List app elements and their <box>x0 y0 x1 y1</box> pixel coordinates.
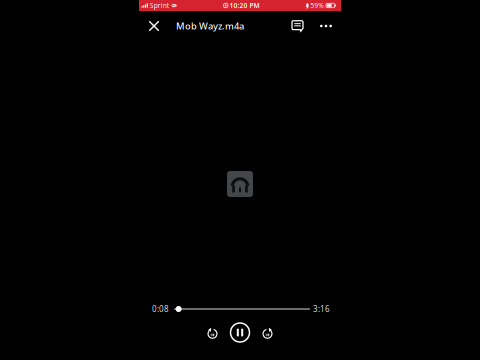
staticText: Sprint <box>150 1 169 10</box>
staticText: 59% <box>310 1 324 10</box>
staticText: 3:16 <box>313 304 330 314</box>
button[interactable]: Skip forward 15 seconds <box>254 322 281 343</box>
button[interactable]: More options <box>315 11 337 41</box>
staticText: 0:08 <box>152 304 169 314</box>
button[interactable]: Comments <box>286 11 309 41</box>
button[interactable]: Pause <box>226 322 254 343</box>
staticText: Mob Wayz.m4a <box>176 20 244 32</box>
button[interactable]: Close <box>141 11 167 41</box>
button[interactable]: Mob Wayz.m4a <box>167 11 244 41</box>
button[interactable]: Skip back 15 seconds <box>199 322 226 343</box>
staticText: 10:20 PM <box>229 1 259 10</box>
